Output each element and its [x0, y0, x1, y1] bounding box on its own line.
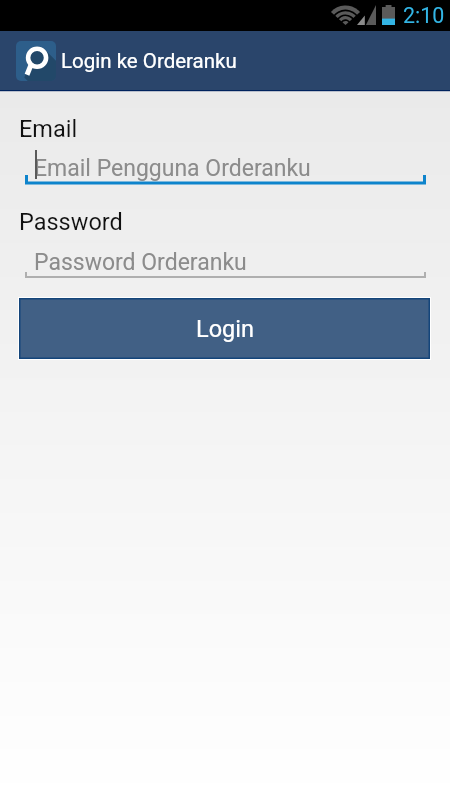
staticText: Password [19, 208, 123, 236]
button[interactable]: Orderanku logo [0, 31, 450, 90]
other: Orderanku logo [16, 41, 56, 81]
staticText: Password Orderanku [34, 249, 247, 276]
staticText: Email Pengguna Orderanku [34, 155, 311, 182]
staticText: Login ke Orderanku [61, 49, 237, 73]
staticText: Email [19, 115, 78, 143]
staticText: 2:10 [403, 3, 445, 28]
button[interactable]: Email Pengguna Orderanku [25, 138, 426, 186]
button[interactable]: Password Orderanku [25, 232, 426, 280]
button[interactable]: Login [17, 296, 432, 361]
staticText: Login [196, 315, 254, 343]
